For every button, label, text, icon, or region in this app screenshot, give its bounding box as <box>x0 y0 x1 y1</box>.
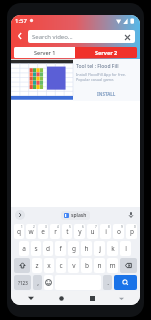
staticText: INSTALL <box>97 91 116 97</box>
staticText: z <box>35 261 39 270</box>
staticText: , <box>37 278 39 287</box>
staticText: o <box>117 227 121 236</box>
button[interactable]: h <box>81 241 92 256</box>
staticText: l <box>125 244 127 253</box>
button[interactable]: e <box>38 224 48 239</box>
button[interactable]: x <box>44 258 54 273</box>
button[interactable]: c <box>56 258 66 273</box>
staticText: w <box>28 227 34 236</box>
button[interactable]: k <box>107 241 118 256</box>
button[interactable]: Back <box>25 292 37 304</box>
button[interactable]: Backspace <box>120 258 137 273</box>
button[interactable]: q <box>14 224 24 239</box>
button[interactable]: n <box>94 258 105 273</box>
button[interactable]: , <box>33 275 42 290</box>
staticText: 0 <box>134 225 136 229</box>
staticText: c <box>59 261 63 270</box>
staticText: t <box>66 227 69 236</box>
button[interactable]: m <box>107 258 118 273</box>
button[interactable]: Emoji <box>44 275 53 290</box>
button[interactable]: i <box>100 224 111 239</box>
staticText: 6 <box>82 225 84 229</box>
staticText: g <box>72 244 76 253</box>
button[interactable]: Shift <box>14 258 30 273</box>
staticText: f <box>59 244 62 253</box>
staticText: d <box>46 244 50 253</box>
staticText: h <box>84 244 89 253</box>
button[interactable]: Search video... <box>28 30 135 43</box>
staticText: splash <box>71 212 87 219</box>
staticText: v <box>72 261 76 270</box>
button[interactable]: INSTALL <box>97 91 116 97</box>
button[interactable]: o <box>113 224 124 239</box>
button[interactable]: l <box>120 241 131 256</box>
button[interactable]: t <box>62 224 72 239</box>
staticText: 9 <box>121 225 123 229</box>
staticText: a <box>22 244 26 253</box>
staticText: k <box>111 244 115 253</box>
staticText: 5 <box>69 225 71 229</box>
staticText: x <box>47 261 51 270</box>
staticText: j <box>99 244 101 253</box>
staticText: u <box>90 227 95 236</box>
button[interactable]: j <box>94 241 105 256</box>
staticText: s <box>34 244 38 253</box>
button[interactable]: Recents <box>86 292 98 304</box>
staticText: Server 1 <box>34 49 56 56</box>
button[interactable]: Tool tel : Flood Fill <box>11 59 140 101</box>
staticText: 7 <box>95 225 97 229</box>
button[interactable]: f <box>55 241 66 256</box>
button[interactable]: Voice input <box>126 210 136 220</box>
button[interactable]: p <box>126 224 137 239</box>
staticText: . <box>107 278 109 287</box>
button[interactable]: a <box>19 241 29 256</box>
button[interactable]: b <box>81 258 92 273</box>
staticText: Search video... <box>32 33 73 41</box>
button[interactable]: g <box>68 241 79 256</box>
staticText: n <box>97 261 102 270</box>
staticText: y <box>78 227 82 236</box>
button[interactable]: Expand suggestions <box>15 210 25 220</box>
button[interactable]: Home <box>55 292 67 304</box>
button[interactable]: Hide keyboard <box>116 293 126 303</box>
staticText: 3 <box>45 225 47 229</box>
staticText: q <box>17 227 21 236</box>
staticText: 4 <box>57 225 59 229</box>
button[interactable]: splash <box>61 211 90 220</box>
button[interactable]: ?123 <box>14 275 31 290</box>
staticText: 8 <box>108 225 110 229</box>
staticText: r <box>54 227 57 236</box>
button[interactable]: y <box>74 224 85 239</box>
button[interactable]: v <box>68 258 79 273</box>
staticText: 1:57 <box>15 17 27 25</box>
button[interactable]: d <box>43 241 53 256</box>
button[interactable]: s <box>31 241 41 256</box>
button[interactable]: Back <box>14 30 26 42</box>
button[interactable]: Server 1 <box>14 47 75 58</box>
button[interactable]: w <box>26 224 36 239</box>
button[interactable]: . <box>103 275 112 290</box>
button[interactable]: Server 2 <box>75 47 137 58</box>
button[interactable]: r <box>50 224 60 239</box>
staticText: 1 <box>21 225 23 229</box>
button[interactable]: u <box>87 224 98 239</box>
staticText: Server 2 <box>95 49 118 56</box>
staticText: m <box>109 261 116 270</box>
staticText: i <box>105 227 107 236</box>
button[interactable]: Search <box>114 275 137 290</box>
staticText: e <box>41 227 45 236</box>
button[interactable]: z <box>32 258 42 273</box>
staticText: b <box>85 261 89 270</box>
staticText: p <box>130 227 134 236</box>
staticText: Tool tel : Flood Fill <box>76 63 119 70</box>
staticText: 2 <box>33 225 35 229</box>
button[interactable]: Clear <box>123 33 131 41</box>
staticText: Install FloodFill App for free. Popular … <box>76 72 127 82</box>
staticText: ?123 <box>18 280 28 286</box>
